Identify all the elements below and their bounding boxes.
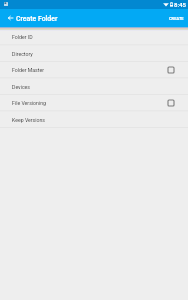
staticText: Keep Versions [12,117,46,123]
button[interactable]: File Versioning [0,94,188,111]
staticText: Create Folder [16,15,58,23]
button[interactable]: Directory [0,45,188,62]
staticText: Folder ID [12,34,33,40]
staticText: Devices [12,84,31,90]
staticText: Folder Master [12,67,44,73]
button[interactable]: Folder Master [0,61,188,78]
button[interactable]: CREATE [165,9,188,27]
staticText: 8:45 [174,1,186,8]
staticText: CREATE [169,16,184,21]
button[interactable]: Keep Versions [0,111,188,128]
button[interactable]: Devices [0,78,188,95]
staticText: File Versioning [12,100,46,106]
staticText: Directory [12,51,33,57]
button[interactable]: Folder ID [0,28,188,45]
button[interactable]: Back [0,9,16,27]
